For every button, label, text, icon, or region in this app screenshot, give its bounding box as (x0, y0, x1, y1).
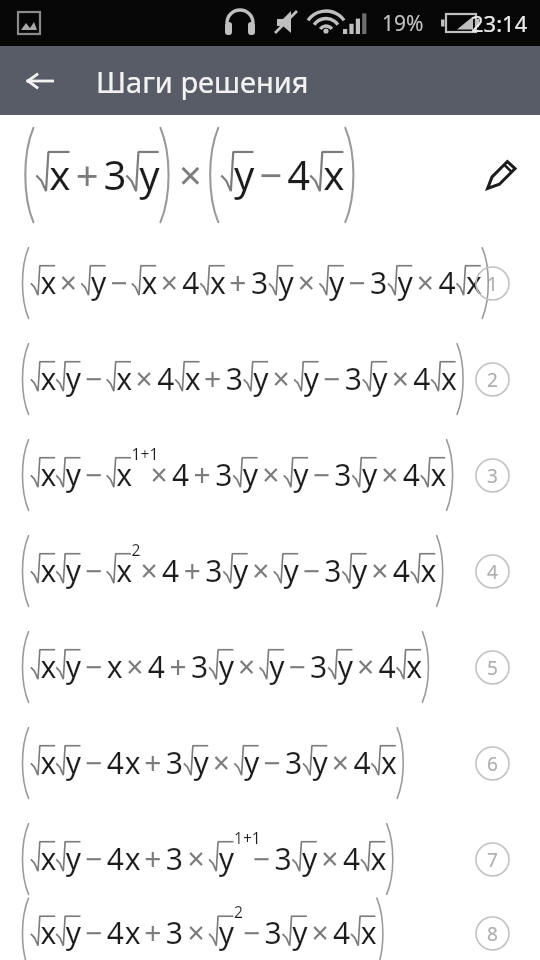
button[interactable] (0, 523, 540, 619)
button[interactable] (0, 907, 540, 960)
button[interactable] (0, 715, 540, 811)
button[interactable] (0, 619, 540, 715)
button[interactable] (0, 811, 540, 907)
button[interactable]: Edit (474, 148, 528, 202)
button[interactable] (0, 331, 540, 427)
button[interactable]: Back (14, 55, 66, 107)
button[interactable] (0, 235, 540, 331)
button[interactable] (0, 427, 540, 523)
